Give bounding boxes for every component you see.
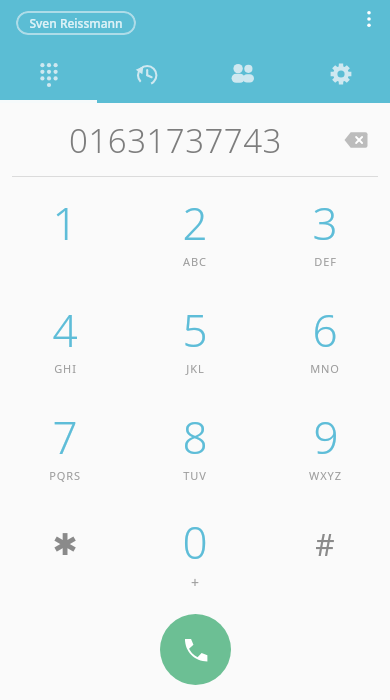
button[interactable]: 2 bbox=[130, 177, 260, 284]
staticText: ✱ bbox=[52, 527, 78, 562]
staticText: # bbox=[315, 524, 335, 565]
button[interactable]: ✱ bbox=[0, 498, 130, 605]
staticText: 3 bbox=[312, 193, 338, 253]
staticText: Sven Reissmann bbox=[29, 15, 123, 31]
button[interactable]: Recents bbox=[97, 45, 194, 103]
staticText: DEF bbox=[314, 254, 337, 269]
button[interactable]: 1 bbox=[0, 177, 130, 284]
staticText: 6 bbox=[312, 300, 338, 360]
staticText: TUV bbox=[183, 468, 207, 483]
staticText: PQRS bbox=[49, 468, 81, 483]
staticText: JKL bbox=[186, 361, 205, 376]
staticText: 0 bbox=[182, 512, 208, 572]
staticText: MNO bbox=[310, 361, 340, 376]
staticText: GHI bbox=[54, 361, 77, 376]
button[interactable]: 7 bbox=[0, 391, 130, 498]
staticText: 1 bbox=[52, 193, 78, 253]
button[interactable]: Contacts bbox=[194, 45, 292, 103]
button[interactable]: 0 bbox=[130, 498, 260, 605]
staticText: + bbox=[191, 573, 200, 592]
staticText: 9 bbox=[313, 407, 339, 467]
staticText: 01631737743 bbox=[69, 118, 282, 163]
button[interactable]: 5 bbox=[130, 284, 260, 391]
staticText: 4 bbox=[52, 300, 78, 360]
button[interactable]: 3 bbox=[260, 177, 390, 284]
button[interactable]: Call bbox=[160, 614, 231, 685]
staticText: ABC bbox=[183, 254, 207, 269]
button[interactable]: 4 bbox=[0, 284, 130, 391]
button[interactable]: 8 bbox=[130, 391, 260, 498]
staticText: 2 bbox=[182, 193, 208, 253]
button[interactable]: Dialpad bbox=[0, 45, 97, 103]
button[interactable]: 6 bbox=[260, 284, 390, 391]
staticText: WXYZ bbox=[309, 468, 342, 483]
button[interactable]: Backspace bbox=[332, 116, 380, 164]
staticText: 7 bbox=[52, 407, 78, 467]
button[interactable]: More options bbox=[352, 2, 386, 36]
staticText: 8 bbox=[182, 407, 208, 467]
button[interactable]: Sven Reissmann bbox=[16, 11, 136, 35]
button[interactable]: Settings bbox=[292, 45, 390, 103]
staticText: 5 bbox=[182, 300, 208, 360]
button[interactable]: 9 bbox=[260, 391, 390, 498]
button[interactable]: # bbox=[260, 498, 390, 605]
